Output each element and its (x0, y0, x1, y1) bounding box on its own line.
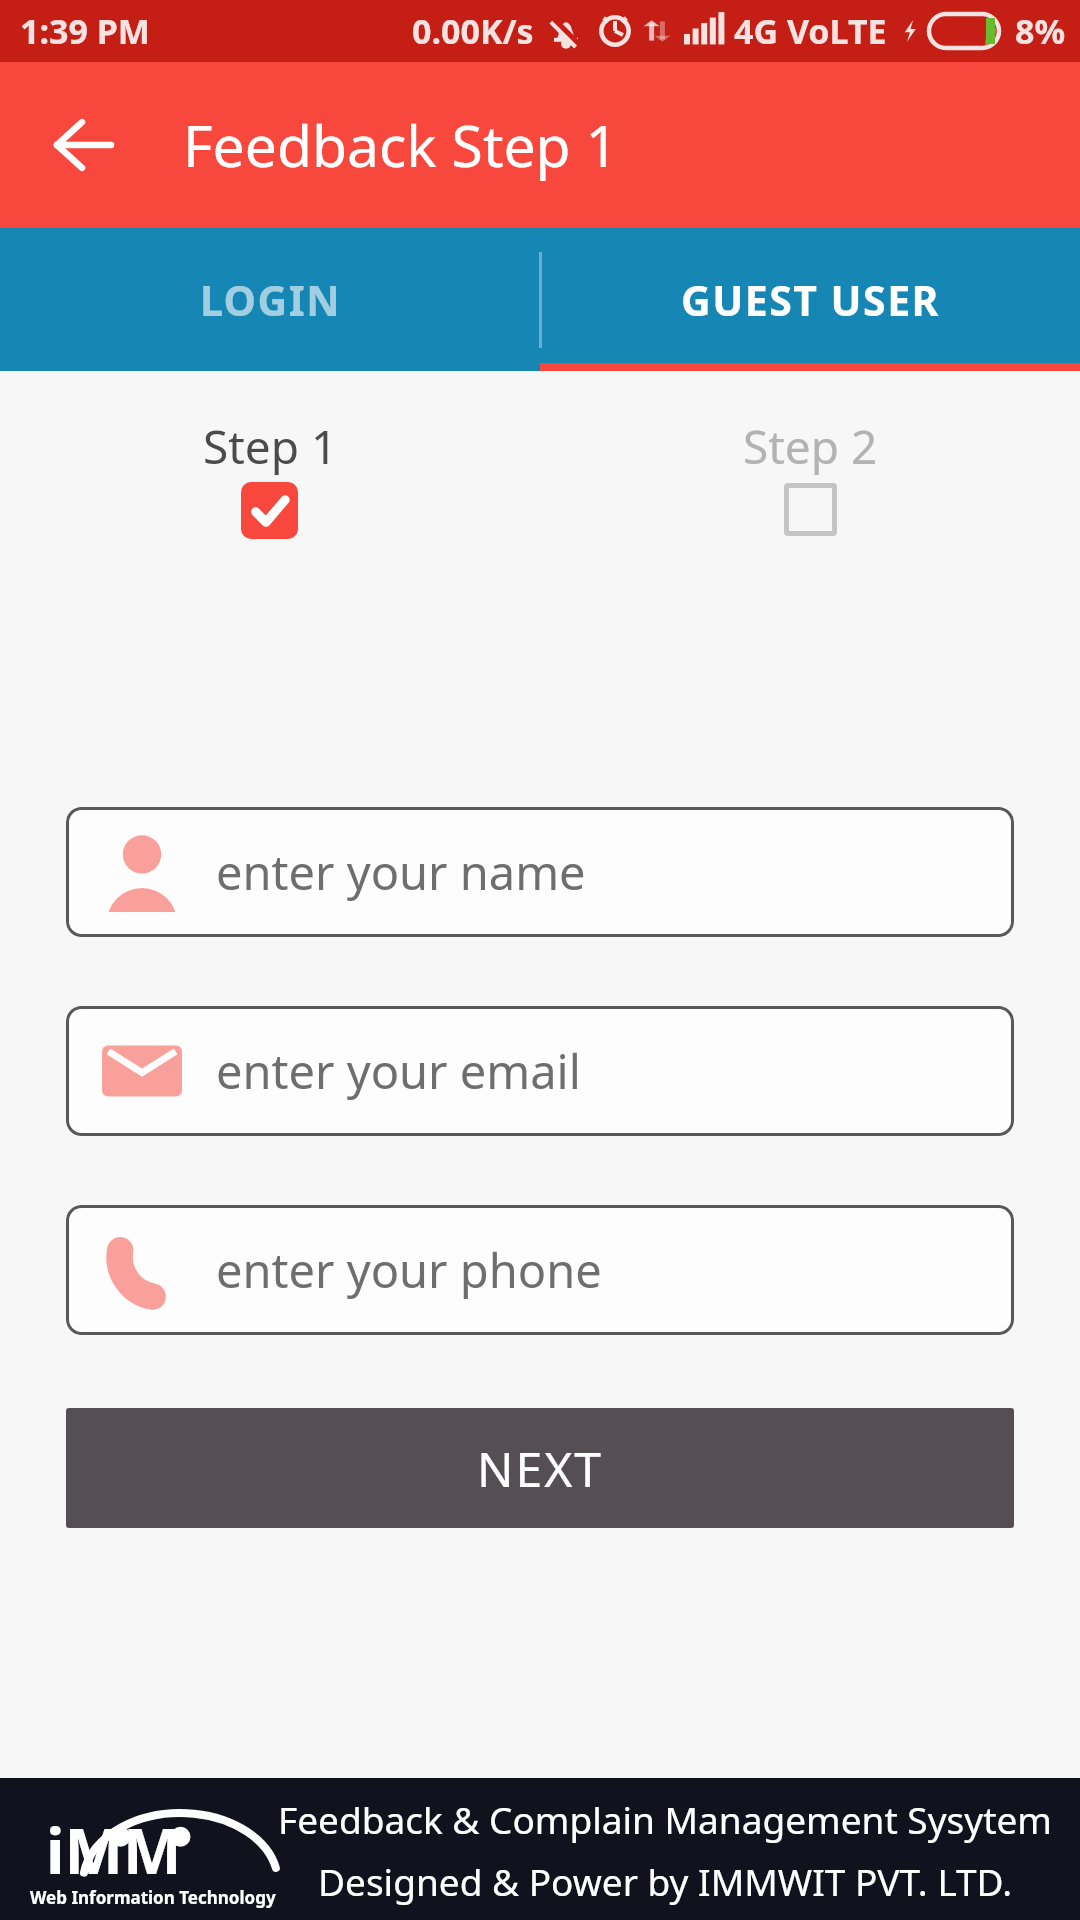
staticText: enter your phone (216, 1238, 602, 1302)
button[interactable]: enter your phone (66, 1205, 1014, 1335)
staticText: GUEST USER (681, 272, 940, 328)
staticText: enter your email (216, 1039, 581, 1103)
staticText: Step 2 (743, 415, 878, 478)
button[interactable]: enter your name (66, 807, 1014, 937)
staticText: 1:39 PM (20, 8, 150, 54)
button[interactable] (241, 482, 298, 539)
staticText: enter your name (216, 840, 586, 904)
button[interactable]: LOGIN (0, 228, 540, 371)
staticText: 0.00K/s (412, 8, 534, 54)
staticText: Feedback Step 1 (183, 106, 619, 184)
button[interactable]: GUEST USER (540, 228, 1080, 371)
staticText: 4G VoLTE (734, 8, 887, 54)
staticText: iMM (46, 1808, 182, 1892)
staticText: Feedback & Complain Management Sysytem (278, 1794, 1052, 1844)
staticText: Web Information Technology (30, 1886, 276, 1909)
button[interactable] (784, 483, 837, 536)
staticText: LOGIN (200, 272, 341, 328)
staticText: NEXT (477, 1436, 603, 1501)
staticText: 8% (1015, 8, 1066, 54)
staticText: Step 1 (203, 415, 338, 478)
button[interactable]: NEXT (66, 1408, 1014, 1528)
staticText: Designed & Power by IMMWIT PVT. LTD. (318, 1856, 1013, 1906)
button[interactable]: enter your email (66, 1006, 1014, 1136)
button[interactable] (40, 100, 130, 190)
